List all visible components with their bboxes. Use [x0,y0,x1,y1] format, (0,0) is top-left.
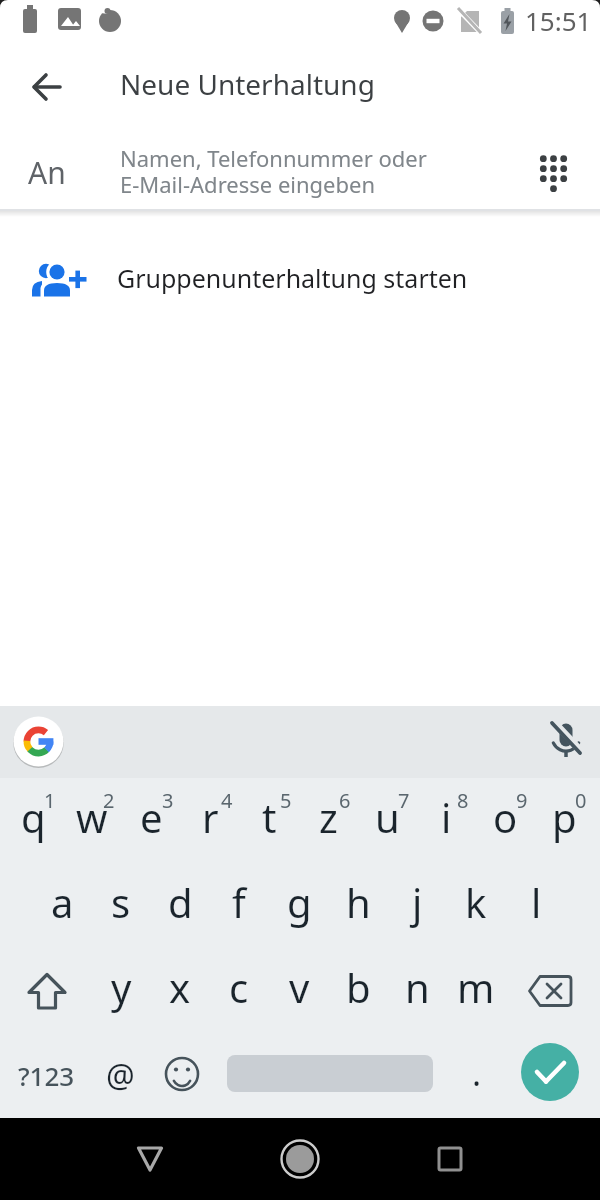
button[interactable] [13,716,64,767]
button[interactable]: g [270,859,328,944]
button[interactable]: i [417,774,475,859]
staticText: m [457,960,495,1014]
button[interactable] [120,1128,180,1190]
button[interactable]: . [455,1033,499,1113]
staticText: d [168,875,193,929]
button[interactable]: ?123 [12,1033,80,1118]
staticText: 8 [457,787,469,813]
staticText: An [28,152,66,193]
button[interactable]: o [476,774,534,859]
button[interactable]: @ [92,1033,148,1118]
button[interactable]: l [507,859,565,944]
staticText: n [405,960,430,1014]
staticText: w [76,790,108,844]
button[interactable]: a [33,859,91,944]
button[interactable] [521,1043,579,1101]
button[interactable]: q [4,774,62,859]
staticText: h [346,875,371,929]
staticText: k [465,875,487,929]
staticText: y [111,960,132,1014]
staticText: f [232,875,246,929]
staticText: @ [106,1054,135,1098]
button[interactable]: r [181,774,239,859]
staticText: 7 [398,787,410,813]
button[interactable] [154,1043,210,1105]
staticText: v [289,960,310,1014]
button[interactable] [518,958,584,1024]
button[interactable] [28,68,66,106]
button[interactable]: f [210,859,268,944]
staticText: u [375,790,400,844]
button[interactable] [528,148,578,198]
staticText: x [169,960,191,1014]
staticText: j [412,875,423,929]
button[interactable]: k [447,859,505,944]
button[interactable]: p [535,774,593,859]
button[interactable] [14,958,80,1024]
button[interactable]: n [388,944,446,1029]
staticText: i [441,790,452,844]
button[interactable]: v [270,944,328,1029]
button[interactable]: y [92,944,150,1029]
staticText: 6 [339,787,351,813]
button[interactable] [420,1128,480,1190]
staticText: o [493,790,518,844]
button[interactable]: m [447,944,505,1029]
button[interactable]: d [151,859,209,944]
button[interactable]: c [210,944,268,1029]
staticText: ?123 [18,1058,75,1093]
staticText: q [21,790,46,844]
button[interactable] [0,132,600,210]
staticText: 2 [103,787,115,813]
button[interactable]: w [63,774,121,859]
button[interactable] [546,720,588,762]
button[interactable]: x [151,944,209,1029]
staticText: e [140,790,163,844]
staticText: a [51,875,74,929]
staticText: Neue Unterhaltung [120,65,375,103]
staticText: Gruppenunterhaltung starten [117,261,468,295]
staticText: Namen, Telefonnummer oder E-Mail-Adresse… [120,143,427,200]
button[interactable]: Gruppenunterhaltung starten [0,230,600,334]
staticText: . [472,1050,482,1096]
staticText: g [287,875,312,929]
staticText: l [531,875,542,929]
staticText: s [111,875,131,929]
staticText: 15:51 [525,3,592,38]
staticText: 4 [221,787,233,813]
button[interactable]: u [358,774,416,859]
staticText: 3 [162,787,174,813]
button[interactable]: e [122,774,180,859]
button[interactable]: j [388,859,446,944]
staticText: c [229,960,249,1014]
staticText: 0 [575,787,587,813]
staticText: r [202,790,219,844]
staticText: z [319,790,338,844]
button[interactable]: h [329,859,387,944]
button[interactable]: t [240,774,298,859]
button[interactable] [270,1128,330,1190]
button[interactable]: s [92,859,150,944]
staticText: 1 [44,787,56,813]
staticText: 5 [280,787,292,813]
button[interactable]: z [299,774,357,859]
staticText: 9 [516,787,528,813]
staticText: t [262,790,277,844]
button[interactable]: b [329,944,387,1029]
staticText: b [346,960,371,1014]
staticText: p [552,790,577,844]
